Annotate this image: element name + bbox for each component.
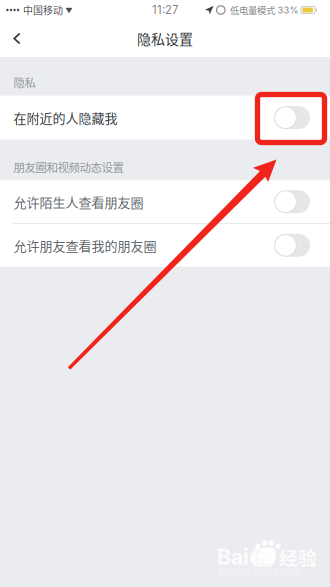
staticText: Bai: [217, 544, 249, 570]
staticText: 隐私设置: [137, 28, 193, 49]
staticText: jingyan.baidu.com: [219, 566, 301, 578]
staticText: 经验: [279, 543, 317, 570]
button[interactable]: 在附近的人隐藏我: [0, 96, 330, 140]
staticText: du: [251, 546, 275, 569]
staticText: 33%: [277, 4, 298, 16]
staticText: 允许陌生人查看朋友圈: [13, 192, 143, 211]
staticText: 低电量模式: [230, 3, 275, 17]
staticText: 在附近的人隐藏我: [13, 108, 117, 127]
staticText: 朋友圈和视频动态设置: [13, 159, 123, 175]
button[interactable]: 允许陌生人查看朋友圈: [0, 180, 330, 223]
staticText: 11:27: [152, 3, 178, 17]
button[interactable]: 返回: [0, 21, 34, 56]
staticText: 中国移动: [23, 3, 63, 17]
staticText: 隐私: [13, 74, 35, 91]
staticText: 允许朋友查看我的朋友圈: [13, 236, 156, 255]
button[interactable]: 允许朋友查看我的朋友圈: [0, 224, 330, 267]
